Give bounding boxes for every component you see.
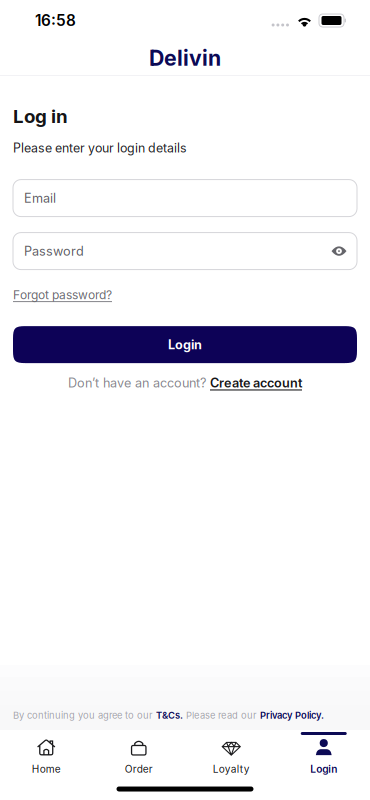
- staticText: Order: [125, 763, 153, 775]
- staticText: Login: [168, 337, 202, 352]
- staticText: Please enter your login details: [13, 141, 187, 156]
- button[interactable]: Loyalty: [185, 730, 277, 778]
- staticText: Create account: [210, 375, 302, 390]
- staticText: Password: [24, 243, 84, 259]
- button[interactable]: Show password: [325, 236, 353, 266]
- staticText: Forgot password?: [13, 288, 112, 302]
- button[interactable]: Forgot password?: [13, 270, 112, 306]
- staticText: Don’t have an account?: [68, 375, 210, 390]
- button[interactable]: Order: [92, 730, 185, 778]
- button[interactable]: Login: [13, 326, 357, 363]
- staticText: Home: [32, 763, 61, 775]
- button[interactable]: Home: [0, 730, 92, 778]
- staticText: Loyalty: [213, 763, 250, 775]
- staticText: By continuing you agree to our: [13, 710, 156, 721]
- button[interactable]: Login: [277, 730, 370, 778]
- staticText: Delivin: [149, 45, 221, 71]
- staticText: Login: [310, 763, 337, 775]
- staticText: Log in: [13, 105, 68, 128]
- staticText: Please read our: [183, 710, 260, 721]
- staticText: Privacy Policy.: [260, 710, 324, 721]
- button[interactable]: Create account: [210, 375, 302, 390]
- staticText: T&Cs.: [156, 710, 183, 721]
- staticText: 16:58: [35, 11, 76, 30]
- staticText: Email: [24, 190, 56, 206]
